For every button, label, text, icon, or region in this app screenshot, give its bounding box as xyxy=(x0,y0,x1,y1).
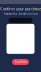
staticText: Confirm xyxy=(15,60,26,64)
button[interactable]: Confirm xyxy=(12,59,29,65)
staticText: Review the details below xyxy=(3,12,37,16)
staticText: Confirm your purchase xyxy=(0,6,41,11)
